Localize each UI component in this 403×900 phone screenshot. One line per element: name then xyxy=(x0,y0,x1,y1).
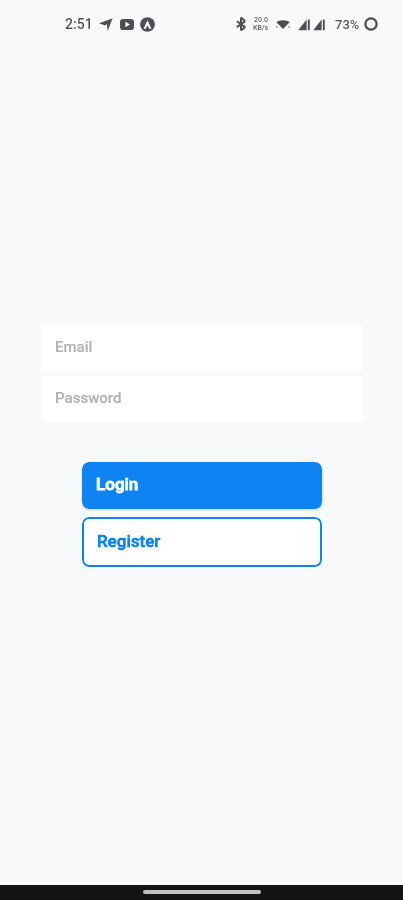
other: Mobile signal xyxy=(298,18,310,31)
other: Wi-Fi connected xyxy=(276,18,290,31)
button[interactable]: Password xyxy=(41,376,363,422)
other: Bluetooth on xyxy=(236,17,246,31)
button[interactable]: Login xyxy=(82,462,322,509)
other: App notification xyxy=(140,17,155,32)
other: Home gesture handle xyxy=(143,890,261,894)
staticText: 73% xyxy=(335,17,360,32)
button[interactable]: Register xyxy=(82,517,322,567)
staticText: Email xyxy=(55,338,93,356)
staticText: 20.0 xyxy=(254,16,268,24)
staticText: KB/s xyxy=(253,24,269,32)
other: YouTube notification xyxy=(120,19,134,30)
staticText: 2:51 xyxy=(65,16,93,32)
staticText: Register xyxy=(97,531,161,551)
other: Mobile signal xyxy=(313,18,325,31)
other: Telegram notification xyxy=(99,18,113,31)
other: Battery 73 percent xyxy=(364,17,378,31)
staticText: Login xyxy=(96,474,139,494)
button[interactable]: Email xyxy=(41,325,363,371)
staticText: Password xyxy=(55,389,122,407)
